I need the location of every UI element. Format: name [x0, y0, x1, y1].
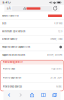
staticText: Required device capabilities: [2, 46, 30, 48]
staticText: iPhone, iPad: [50, 38, 62, 41]
button[interactable]: Reload page: [52, 5, 58, 12]
staticText: 20 Jul 2024: [50, 76, 61, 79]
staticText: Bundle identifier: [2, 14, 19, 17]
staticText: App Store: [51, 67, 61, 70]
button[interactable]: Back: [3, 90, 15, 100]
staticText: Minimum SDK version: [2, 30, 25, 33]
button[interactable]: Share: [26, 90, 38, 100]
staticText: Provisioned devices: [3, 85, 22, 88]
staticText: Supported architectures: [2, 53, 25, 56]
staticText: arm64, arm64e: [47, 53, 62, 56]
staticText: aA: [7, 7, 11, 10]
staticText: Profile type: [3, 67, 15, 70]
staticText: Device family: [2, 38, 17, 41]
staticText: 12.0: [58, 30, 62, 33]
staticText: Size: [2, 22, 6, 25]
button[interactable]: Tabs: [49, 90, 60, 100]
staticText: Profile expiration: [3, 76, 21, 79]
button[interactable]: Forward: [15, 90, 26, 100]
button[interactable]: Page settings: [5, 5, 12, 12]
staticText: None: [56, 85, 61, 88]
staticText: 4.97 MB: [54, 22, 62, 25]
staticText: 9:41: [2, 1, 8, 4]
staticText: Provisioning profile: [3, 61, 23, 63]
button[interactable]: Bookmarks: [38, 90, 49, 100]
button[interactable]: Address: [12, 6, 52, 11]
